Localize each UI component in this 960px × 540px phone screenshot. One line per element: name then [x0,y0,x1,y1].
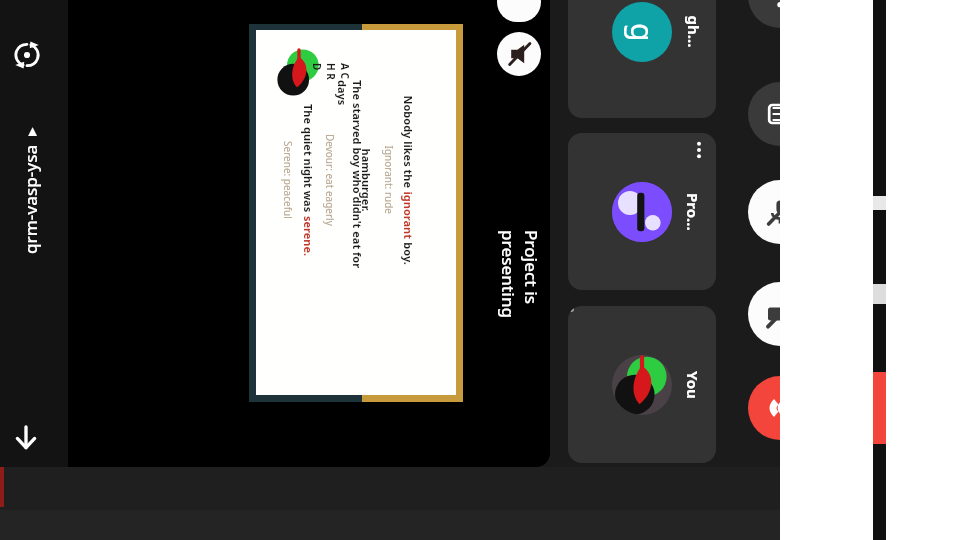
staticText: Devour: eat eagerly [323,134,337,226]
staticText: gh… [683,15,703,48]
staticText: qrm-vasp-ysa ▸ [19,127,42,254]
button[interactable]: Switch camera [6,34,48,76]
button[interactable]: Unmute audio [497,32,541,76]
button[interactable]: Call control [748,180,812,244]
staticText: Ignorant: rude [381,145,395,214]
staticText: boy. [400,239,415,265]
button[interactable]: Call control [748,282,812,346]
staticText: g [622,23,663,42]
staticText: Nobody likes the [400,95,415,191]
button[interactable]: Pro… [568,133,716,290]
staticText: Pro… [683,193,703,231]
button[interactable]: You [568,306,716,463]
button[interactable]: Call control [748,0,812,28]
button[interactable]: Call control [748,376,812,440]
button[interactable]: Call control [748,82,812,146]
staticText: serene. [301,216,316,257]
staticText: The quiet night was [301,104,316,216]
staticText: Serene: peaceful [281,141,295,219]
button[interactable] [68,0,550,467]
staticText: A C H R D [310,63,352,89]
button[interactable]: g [568,0,716,118]
staticText: ignorant [400,191,415,239]
staticText: You [683,371,703,399]
button[interactable]: More options [682,133,716,167]
staticText: The starved boy who didn't eat for days [335,80,365,280]
button[interactable]: qrm-vasp-ysa ▸ [0,170,130,210]
staticText: Project is presenting [497,230,543,350]
button[interactable]: Collapse [6,415,46,459]
staticText: hamburger. [358,148,373,212]
